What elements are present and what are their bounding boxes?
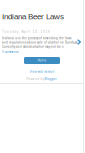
staticText: Home (37, 59, 46, 62)
staticText: Blogger. (44, 77, 57, 81)
staticText: 3 comments: (2, 50, 19, 54)
staticText: Tuesday, April 19, 2016 (2, 30, 50, 33)
staticText: View web version (29, 70, 54, 73)
button[interactable]: Older posts (77, 39, 81, 45)
button[interactable]: View web version (29, 70, 54, 73)
staticText: Powered by (26, 77, 43, 81)
staticText: and regulations about sale of alcohol on… (2, 41, 78, 44)
staticText: Indiana is in the process of amending th… (2, 36, 71, 40)
button[interactable]: 3 comments: (2, 50, 19, 54)
button[interactable]: Home (24, 57, 60, 64)
button[interactable]: Blogger. (44, 77, 57, 81)
staticText: Indiana Beer Laws (2, 12, 64, 21)
staticText: Currently as it stands alcohol may not b… (2, 45, 63, 48)
